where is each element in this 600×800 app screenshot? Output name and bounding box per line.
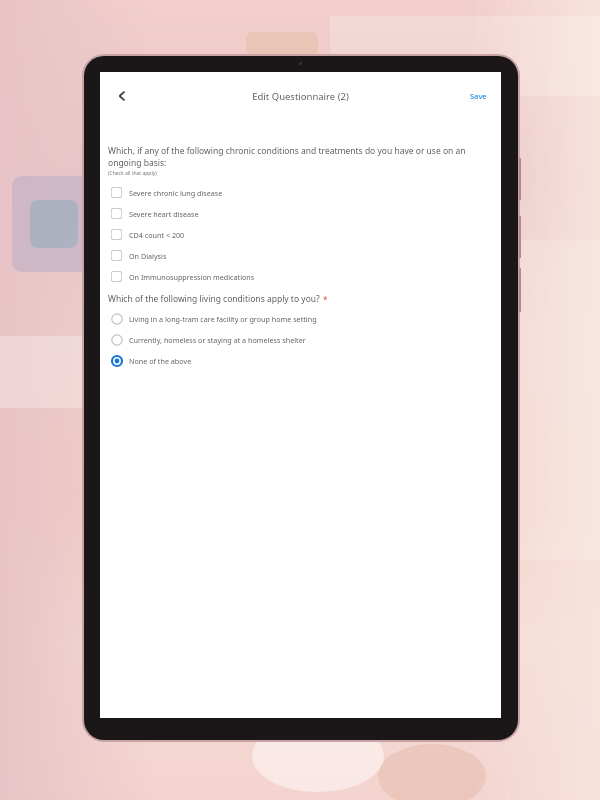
staticText: Save <box>470 91 487 101</box>
staticText: (Check all that apply) <box>108 170 157 177</box>
staticText: Currently, homeless or staying at a home… <box>129 335 306 345</box>
button[interactable]: On Dialysis <box>108 245 489 266</box>
button[interactable]: Currently, homeless or staying at a home… <box>108 329 489 350</box>
button[interactable]: Severe chronic lung disease <box>108 182 489 203</box>
button[interactable]: Living in a long-tram care facility or g… <box>108 308 489 329</box>
button[interactable]: None of the above <box>108 350 489 371</box>
staticText: On Immunosuppression medications <box>129 272 255 282</box>
button[interactable]: On Immunosuppression medications <box>108 266 489 287</box>
staticText: Which, if any of the following chronic c… <box>108 145 489 169</box>
staticText: * <box>323 294 328 305</box>
staticText: Which of the following living conditions… <box>108 293 320 305</box>
button[interactable]: Severe heart disease <box>108 203 489 224</box>
staticText: Living in a long-tram care facility or g… <box>129 314 317 324</box>
staticText: Severe heart disease <box>129 209 199 219</box>
staticText: Edit Questionnaire (2) <box>252 90 349 103</box>
staticText: CD4 count < 200 <box>129 230 185 240</box>
staticText: None of the above <box>129 356 192 366</box>
button[interactable]: Save <box>466 85 491 107</box>
button[interactable]: CD4 count < 200 <box>108 224 489 245</box>
staticText: Severe chronic lung disease <box>129 188 223 198</box>
staticText: On Dialysis <box>129 251 167 261</box>
button[interactable]: Back <box>104 78 140 114</box>
